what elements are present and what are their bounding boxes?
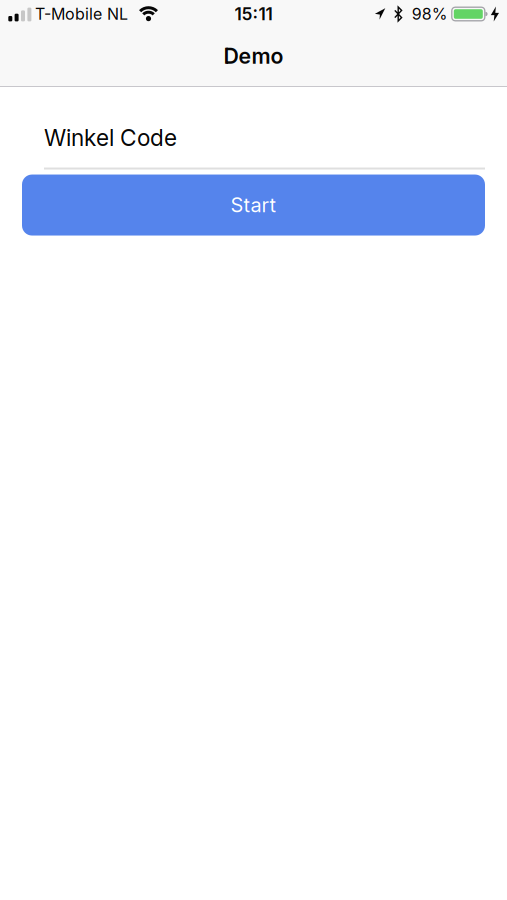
staticText: 15:11 <box>234 4 272 24</box>
staticText: T-Mobile NL <box>35 5 128 23</box>
staticText: 98% <box>412 5 448 23</box>
staticText: Winkel Code <box>44 124 177 151</box>
button[interactable]: Winkel Code <box>0 124 507 169</box>
staticText: Demo <box>223 43 283 69</box>
staticText: Start <box>230 193 276 217</box>
button[interactable]: Start <box>22 174 485 235</box>
